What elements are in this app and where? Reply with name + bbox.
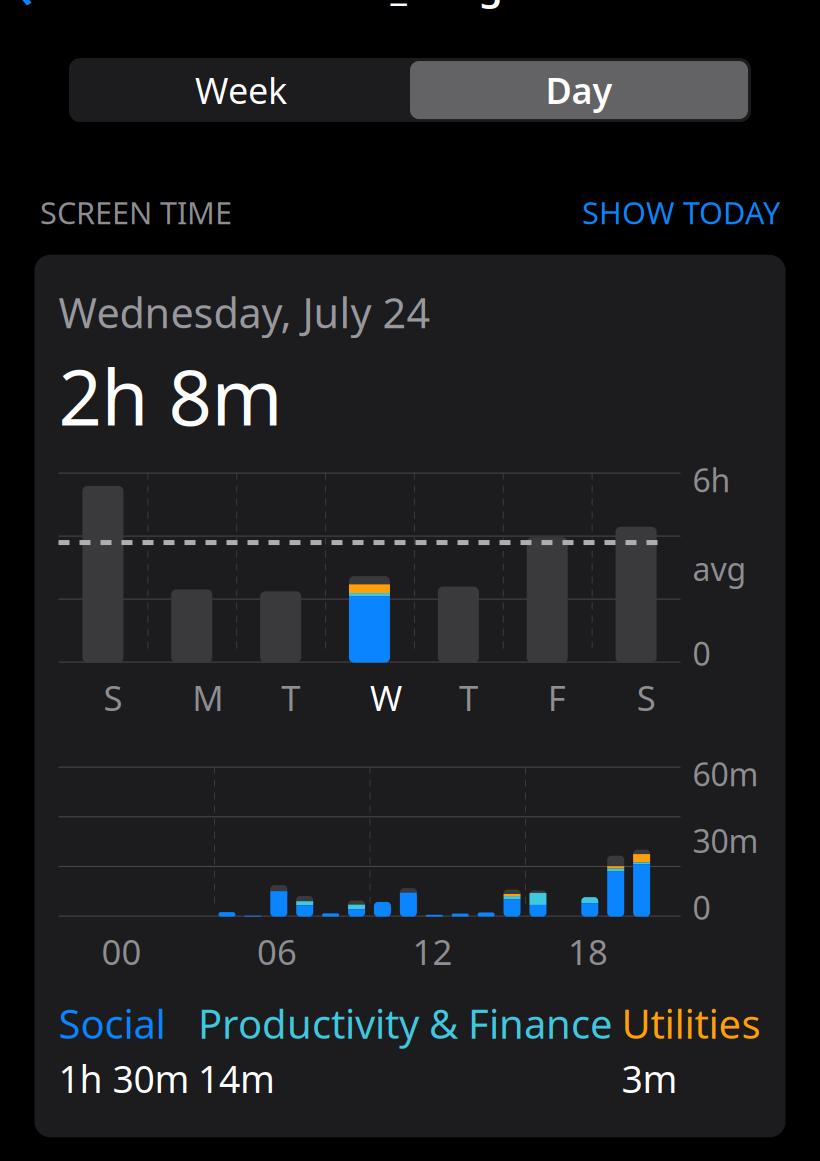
staticText: M [192, 675, 223, 721]
staticText: 1h 30m [58, 1054, 189, 1103]
staticText: 06 [257, 929, 297, 975]
staticText: T [281, 675, 300, 721]
button[interactable]: SHOW TODAY [582, 192, 780, 233]
staticText: 14m [198, 1054, 275, 1103]
staticText: 3m [621, 1054, 677, 1103]
staticText: S [103, 675, 122, 721]
staticText: 2h 8m [58, 346, 282, 447]
staticText: SHOW TODAY [582, 192, 780, 233]
staticText: Day [545, 66, 612, 114]
staticText: Social [58, 997, 165, 1050]
staticText: S [637, 675, 656, 721]
staticText: Productivity & Finance [198, 997, 613, 1050]
staticText: T [459, 675, 478, 721]
staticText: 00 [101, 929, 141, 975]
staticText: 12 [412, 929, 452, 975]
staticText: Utilities [621, 997, 760, 1050]
staticText: Week [195, 66, 287, 114]
button[interactable]: ‹ [0, 0, 263, 32]
staticText: Wednesday, July 24 [58, 285, 430, 340]
staticText: F [548, 675, 566, 721]
staticText: 30m [692, 819, 758, 862]
staticText: avg [692, 547, 746, 590]
staticText: SCREEN TIME [40, 192, 232, 233]
staticText: 0 [692, 886, 710, 929]
staticText: ‹ [14, 0, 34, 26]
staticText: W [370, 675, 402, 721]
button[interactable]: Week [72, 61, 410, 119]
staticText: 6h [692, 459, 730, 501]
staticText: 18 [568, 929, 608, 975]
staticText: 0 [692, 632, 710, 675]
button[interactable]: Day [410, 61, 748, 119]
staticText: hua_bang [317, 0, 502, 11]
staticText: 60m [692, 753, 758, 795]
